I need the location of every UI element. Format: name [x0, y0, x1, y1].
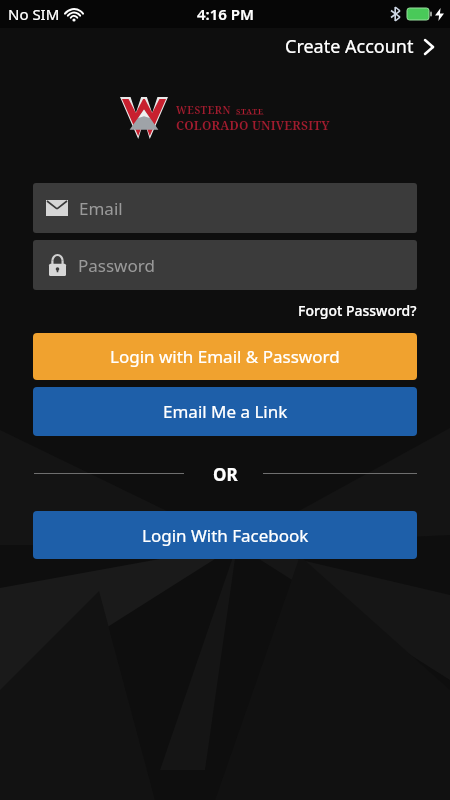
staticText: No SIM	[8, 4, 60, 24]
staticText: Email Me a Link	[163, 400, 288, 423]
staticText: OR	[213, 463, 238, 486]
button[interactable]: Forgot Password?	[298, 301, 417, 320]
button[interactable]: Login With Facebook	[33, 511, 417, 559]
button[interactable]: Login with Email & Password	[33, 333, 417, 380]
staticText: Password	[78, 254, 155, 277]
button[interactable]: Password	[33, 240, 417, 290]
button[interactable]: Email Me a Link	[33, 387, 417, 436]
staticText: Login with Email & Password	[110, 345, 340, 368]
staticText: Login With Facebook	[142, 524, 309, 547]
staticText: WESTERN	[176, 103, 232, 117]
staticText: STATE	[236, 106, 264, 116]
staticText: Email	[79, 197, 123, 220]
staticText: Create Account	[285, 34, 414, 59]
staticText: Forgot Password?	[298, 301, 417, 320]
button[interactable]: Email	[33, 183, 417, 233]
staticText: 4:16 PM	[197, 4, 254, 24]
button[interactable]: Create Account	[269, 30, 450, 63]
staticText: COLORADO UNIVERSITY	[176, 117, 330, 133]
